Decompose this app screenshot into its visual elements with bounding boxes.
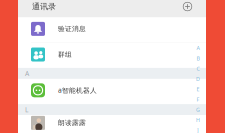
staticText: L	[25, 105, 28, 114]
staticText: D	[196, 75, 200, 82]
staticText: H	[196, 116, 200, 124]
staticText: E	[196, 86, 199, 93]
staticText: 通讯录	[32, 2, 56, 11]
staticText: I	[197, 127, 199, 133]
staticText: C	[196, 65, 199, 72]
staticText: 朗读露露	[58, 119, 86, 127]
staticText: G	[196, 106, 200, 113]
button[interactable]: 群组	[18, 43, 206, 68]
staticText: 群组	[58, 50, 72, 59]
button[interactable]: 朗读露露	[18, 115, 206, 133]
button[interactable]: Add contact	[183, 2, 206, 11]
staticText: 验证消息	[58, 25, 86, 33]
staticText: a智能机器人	[58, 86, 97, 95]
button[interactable]: 验证消息	[18, 17, 206, 43]
staticText: B	[196, 55, 199, 62]
staticText: F	[196, 96, 199, 103]
staticText: A	[196, 44, 199, 52]
staticText: A	[25, 69, 29, 78]
button[interactable]: a智能机器人	[18, 79, 206, 104]
